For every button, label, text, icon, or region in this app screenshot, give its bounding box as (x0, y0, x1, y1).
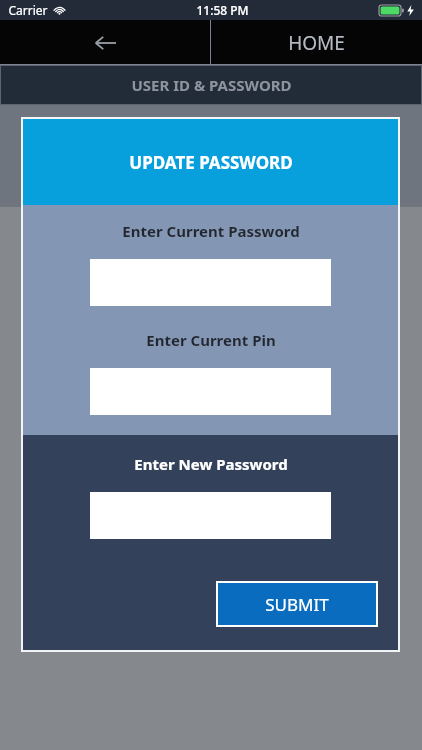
staticText: HOME (288, 30, 345, 56)
staticText: Enter Current Password (122, 221, 300, 241)
button[interactable]: SUBMIT (218, 583, 376, 625)
staticText: UPDATE PASSWORD (129, 151, 293, 174)
button[interactable]: UPDATE PASSWORD (23, 119, 398, 205)
staticText: USER ID & PASSWORD (131, 75, 292, 95)
staticText: SUBMIT (265, 593, 329, 616)
staticText: Carrier (8, 2, 48, 18)
button[interactable]: HOME (211, 20, 422, 65)
button[interactable]: Back (0, 20, 210, 65)
staticText: Enter Current Pin (146, 330, 276, 350)
staticText: Enter New Password (134, 454, 288, 474)
staticText: 11:58 PM (196, 2, 249, 18)
